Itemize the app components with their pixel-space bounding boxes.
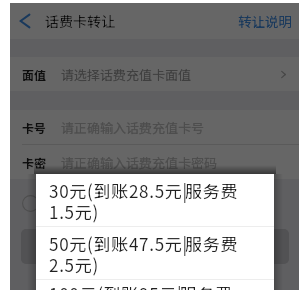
staticText: 100元(到账95元|服务费 bbox=[49, 281, 233, 290]
staticText: 请正确输入话费充值卡号 bbox=[61, 118, 205, 137]
staticText: 卡密 bbox=[22, 154, 47, 171]
staticText: 卡号 bbox=[22, 119, 47, 136]
staticText: 面值 bbox=[22, 66, 47, 83]
button[interactable]: 提交 bbox=[21, 229, 289, 264]
staticText: 我已阅读并同意 bbox=[46, 196, 123, 212]
button[interactable]: 50元(到账47.5元|服务费 bbox=[36, 227, 274, 279]
button[interactable]: Back bbox=[10, 6, 40, 36]
staticText: 30元(到账28.5元|服务费 bbox=[49, 178, 239, 203]
button[interactable]: 面值 bbox=[10, 57, 299, 91]
button[interactable]: 我已阅读并同意 bbox=[10, 195, 299, 212]
staticText: 2.5元) bbox=[49, 252, 99, 277]
staticText: 话费卡转让 bbox=[45, 11, 115, 31]
staticText: 50元(到账47.5元|服务费 bbox=[49, 231, 239, 256]
staticText: 提交 bbox=[142, 237, 169, 256]
button[interactable]: 转让说明 bbox=[230, 11, 299, 31]
staticText: 请选择话费充值卡面值 bbox=[61, 65, 192, 84]
staticText: 1.5元) bbox=[49, 199, 99, 224]
staticText: 转让说明 bbox=[238, 11, 292, 31]
button[interactable]: 30元(到账28.5元|服务费 bbox=[36, 174, 274, 226]
staticText: 请正确输入话费充值卡密码 bbox=[61, 153, 218, 172]
button[interactable]: 100元(到账95元|服务费 bbox=[36, 280, 274, 290]
